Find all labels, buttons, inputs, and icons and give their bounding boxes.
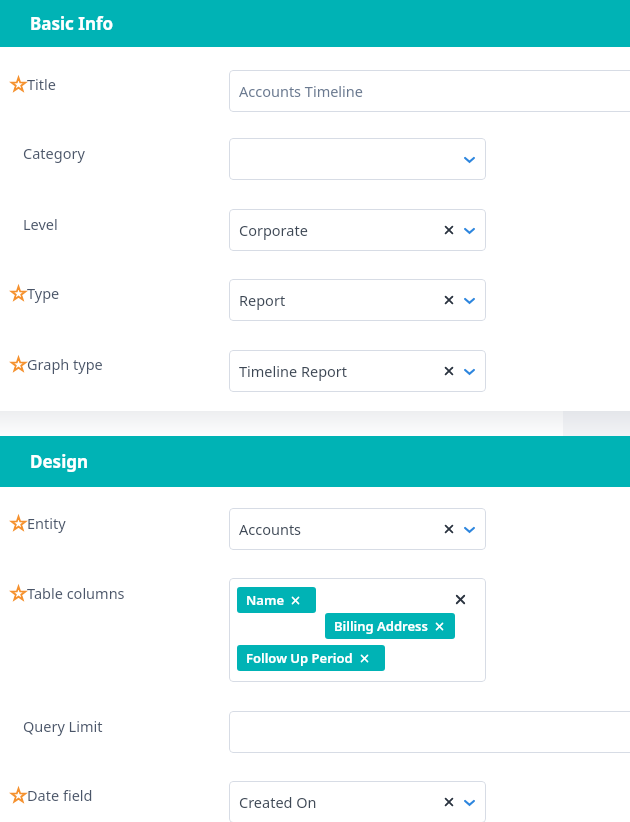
button[interactable]: Graph type [229, 350, 486, 392]
button[interactable]: Query Limit [229, 711, 630, 753]
staticText: Level [23, 214, 58, 234]
button[interactable]: Title [229, 70, 630, 112]
staticText: Entity [27, 513, 66, 533]
staticText: Graph type [27, 354, 103, 374]
button[interactable]: Clear table columns [455, 594, 466, 605]
button[interactable]: Table columns [229, 578, 486, 682]
staticText: Corporate [239, 220, 308, 240]
staticText: Title [27, 74, 56, 94]
staticText: Query Limit [23, 716, 103, 736]
staticText: Created On [239, 792, 317, 812]
staticText: Timeline Report [239, 361, 348, 381]
button[interactable]: Type [229, 279, 486, 321]
staticText: Accounts Timeline [239, 81, 363, 101]
staticText: Category [23, 143, 85, 163]
button[interactable]: Category [229, 138, 486, 180]
staticText: Type [27, 283, 60, 303]
staticText: Report [239, 290, 286, 310]
staticText: Basic Info [30, 12, 114, 35]
button[interactable]: Name [237, 587, 316, 613]
button[interactable]: Entity [229, 508, 486, 550]
button[interactable]: Level [229, 209, 486, 251]
button[interactable]: Billing Address [325, 613, 455, 639]
staticText: Follow Up Period [246, 649, 353, 667]
button[interactable]: Follow Up Period [237, 645, 385, 671]
button[interactable]: Date field [229, 781, 486, 822]
staticText: Design [30, 450, 89, 473]
staticText: Date field [27, 785, 93, 805]
staticText: Billing Address [334, 617, 428, 635]
staticText: Name [246, 591, 284, 609]
staticText: Accounts [239, 519, 302, 539]
staticText: Table columns [27, 583, 125, 603]
